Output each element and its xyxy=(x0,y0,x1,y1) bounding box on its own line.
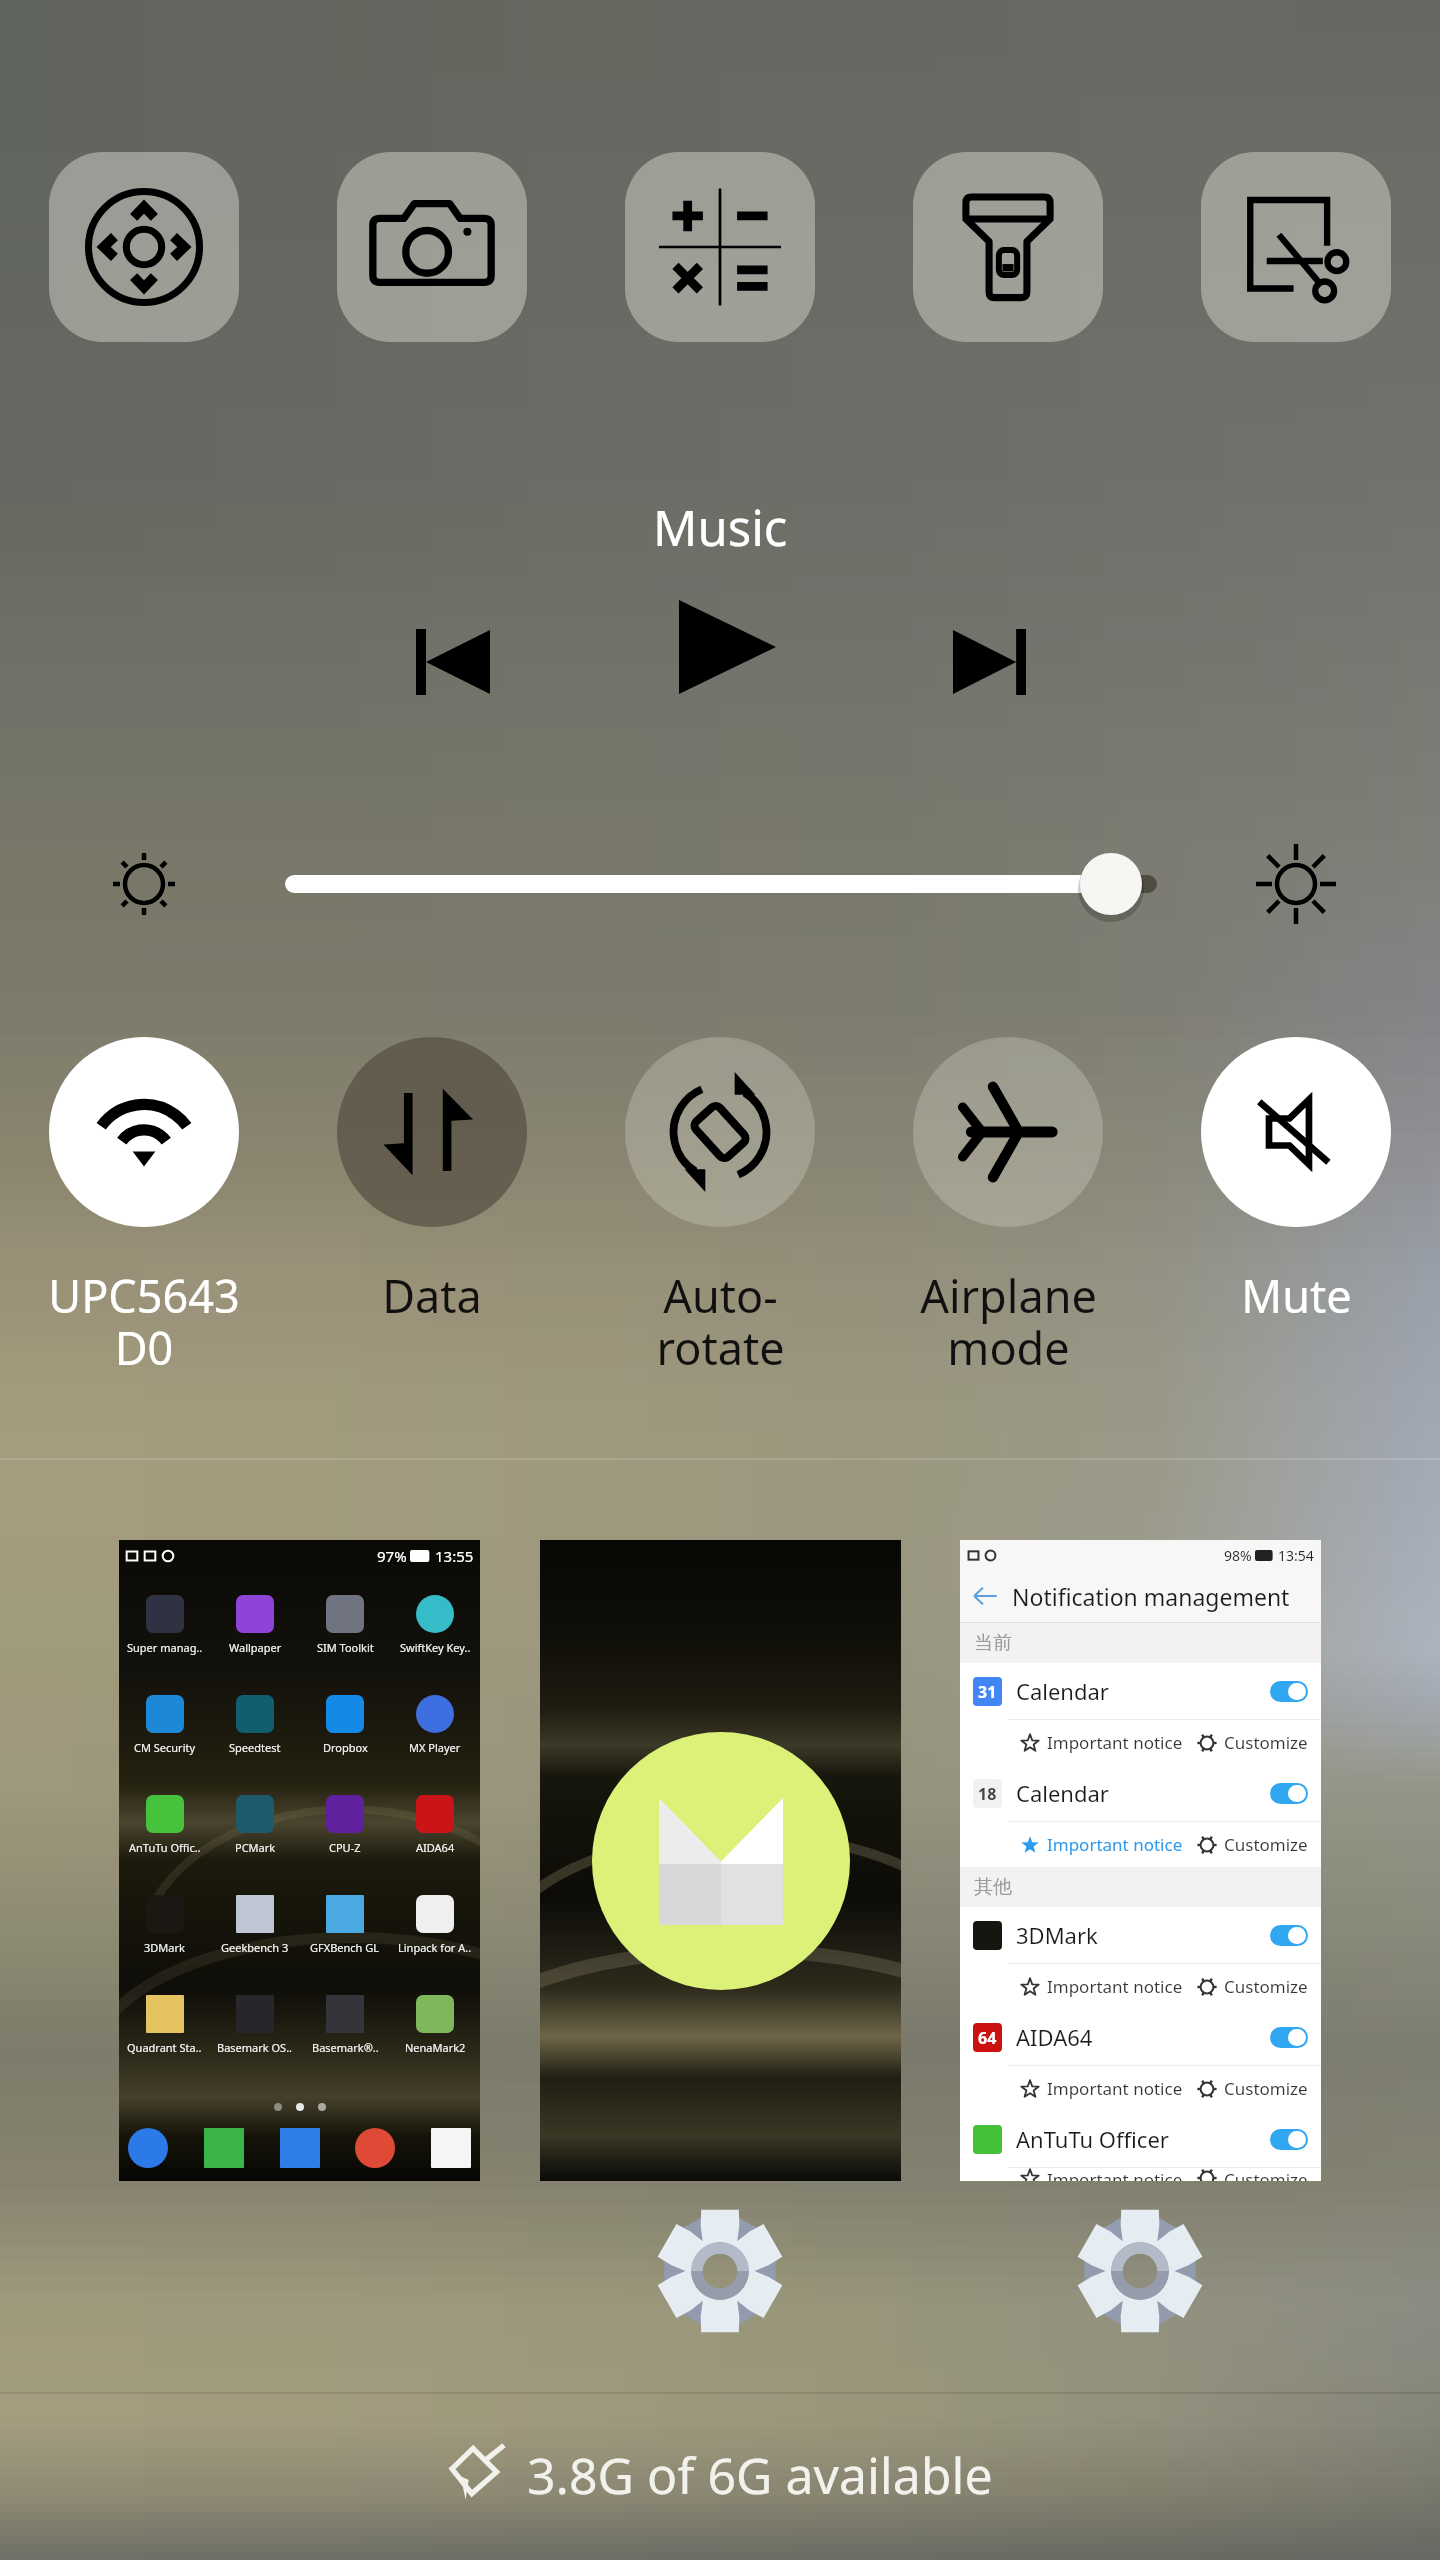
staticText: 3DMark xyxy=(144,1940,185,1955)
staticText: Mute xyxy=(1241,1265,1352,1326)
staticText: Customize xyxy=(1224,1975,1308,1998)
staticText: Customize xyxy=(1224,2077,1308,2100)
staticText: Calendar xyxy=(1016,1778,1109,1808)
staticText: CPU-Z xyxy=(329,1840,361,1855)
staticText: AnTuTu Officer xyxy=(1016,2124,1169,2154)
staticText: SIM Toolkit xyxy=(317,1640,374,1655)
staticText: UPC5643 D0 xyxy=(48,1265,240,1378)
staticText: Quadrant Sta.. xyxy=(127,2040,202,2055)
staticText: Music xyxy=(653,494,788,561)
staticText: Customize xyxy=(1224,1833,1308,1856)
staticText: Auto- rotate xyxy=(656,1265,785,1378)
staticText: AIDA64 xyxy=(1016,2022,1093,2052)
button[interactable]: Data xyxy=(288,1037,576,1326)
staticText: 其他 xyxy=(974,1875,1012,1899)
staticText: Important notice xyxy=(1047,2077,1183,2100)
button[interactable]: Airplane mode xyxy=(864,1037,1152,1378)
button[interactable]: UPC5643 D0 xyxy=(0,1037,288,1378)
staticText: Basemark®.. xyxy=(312,2040,379,2055)
staticText: Notification management xyxy=(1012,1581,1290,1612)
staticText: Dropbox xyxy=(323,1740,368,1755)
button[interactable]: Screenshot xyxy=(1201,152,1391,342)
staticText: Calendar xyxy=(1016,1676,1109,1706)
staticText: Airplane mode xyxy=(920,1265,1097,1378)
staticText: CM Security xyxy=(134,1740,196,1755)
staticText: 13:54 xyxy=(1278,1546,1314,1565)
staticText: 13:55 xyxy=(435,1546,474,1566)
staticText: 31 xyxy=(978,1681,997,1703)
staticText: Customize xyxy=(1224,2168,1308,2181)
button[interactable]: Play xyxy=(667,587,787,707)
staticText: Wallpaper xyxy=(229,1640,282,1655)
staticText: NenaMark2 xyxy=(405,2040,466,2055)
button[interactable]: Next xyxy=(929,602,1049,722)
staticText: 3DMark xyxy=(1016,1920,1098,1950)
staticText: 98% xyxy=(1224,1546,1252,1565)
staticText: Important notice xyxy=(1047,1975,1183,1998)
staticText: Important notice xyxy=(1047,1731,1183,1754)
staticText: PCMark xyxy=(235,1840,276,1855)
staticText: Important notice xyxy=(1047,1833,1183,1856)
staticText: Speedtest xyxy=(229,1740,281,1755)
button[interactable]: Calculator xyxy=(625,152,815,342)
staticText: 64 xyxy=(978,2027,997,2049)
button[interactable]: Camera xyxy=(337,152,527,342)
button[interactable]: App settings xyxy=(1076,2207,1204,2335)
staticText: Basemark OS.. xyxy=(217,2040,293,2055)
staticText: Customize xyxy=(1224,1731,1308,1754)
button[interactable]: Smart touch xyxy=(49,152,239,342)
button[interactable]: Recent app: home screen xyxy=(540,1540,901,2181)
button[interactable]: Recent app: notification management xyxy=(960,1540,1321,2181)
button[interactable]: Previous xyxy=(393,602,513,722)
staticText: Important notice xyxy=(1047,2168,1183,2181)
staticText: 3.8G of 6G available xyxy=(527,2441,993,2509)
staticText: 97% xyxy=(377,1546,407,1566)
staticText: 18 xyxy=(978,1783,997,1805)
staticText: GFXBench GL xyxy=(310,1940,380,1955)
staticText: Super manag.. xyxy=(127,1640,203,1655)
staticText: 当前 xyxy=(974,1631,1012,1655)
staticText: AIDA64 xyxy=(416,1840,455,1855)
button[interactable]: Mute xyxy=(1152,1037,1440,1326)
button[interactable]: Flashlight xyxy=(913,152,1103,342)
staticText: Geekbench 3 xyxy=(221,1940,289,1955)
staticText: SwiftKey Key.. xyxy=(400,1640,471,1655)
staticText: Data xyxy=(382,1265,482,1326)
button[interactable]: App settings xyxy=(656,2207,784,2335)
button[interactable]: Recent app: launcher xyxy=(119,1540,480,2181)
button[interactable]: Auto- rotate xyxy=(576,1037,864,1378)
staticText: AnTuTu Offic.. xyxy=(129,1840,201,1855)
staticText: Linpack for A.. xyxy=(398,1940,472,1955)
button[interactable]: Clear memory xyxy=(0,2420,1440,2530)
staticText: MX Player xyxy=(409,1740,461,1755)
